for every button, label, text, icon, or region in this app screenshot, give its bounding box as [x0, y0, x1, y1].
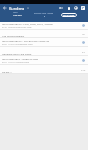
- staticText: rtr: [82, 33, 85, 36]
- button[interactable]: READ MORE: [61, 13, 77, 17]
- staticText: 01:31 12:00:00 Stop/Cross Suite: [2, 26, 32, 29]
- staticText: MEASUREMENT : GREG OLIVER: [2, 57, 39, 60]
- button[interactable]: MEASUREMENTS: 1978, 2009, 2010, 100000: [0, 22, 88, 29]
- staticText: MEASUREMENTS: 1978, 2009, 2010, 100000: [2, 22, 53, 25]
- button[interactable]: Menu: [79, 4, 86, 12]
- button[interactable]: Options: [80, 57, 87, 64]
- staticText: 130 429: [13, 14, 22, 17]
- staticText: 105 Second Breaks: [2, 34, 80, 37]
- button[interactable]: Back: [0, 4, 9, 12]
- staticText: MEASUREMENTS : CHARLOTTE ADVENTS: [2, 39, 50, 42]
- staticText: Recently read · edited: [34, 12, 54, 15]
- button[interactable]: Tartlet 1: [0, 65, 88, 73]
- button[interactable]: Rating: [80, 47, 87, 55]
- button[interactable]: Options: [80, 39, 87, 46]
- button[interactable]: Options: [80, 22, 87, 29]
- staticText: READ MORE: [63, 14, 75, 17]
- button[interactable]: 105 Second Breaks: [0, 30, 88, 37]
- staticText: 03:11 11:21:41 Another Place: [2, 61, 30, 64]
- button[interactable]: MEASUREMENT : GREG OLIVER: [0, 56, 88, 64]
- staticText: since: [13, 11, 18, 14]
- staticText: Kundera: [9, 6, 25, 11]
- button[interactable]: Record: [72, 4, 79, 12]
- button[interactable]: MEASUREMENTS : CHARLOTTE ADVENTS: [0, 38, 88, 46]
- staticText: 02:41 11:47:10 Somewhere Place: [2, 43, 33, 46]
- staticText: Tartlet 1: [2, 70, 80, 73]
- button[interactable]: Rating: [80, 30, 87, 37]
- button[interactable]: Book: [65, 4, 72, 12]
- button[interactable]: Camera: [57, 4, 65, 12]
- staticText: 8.7: [82, 51, 86, 54]
- button[interactable]: Handled Sarm Like Quick: [0, 47, 88, 55]
- button[interactable]: Rating: [80, 65, 87, 73]
- staticText: Handled Sarm Like Quick: [2, 52, 80, 55]
- staticText: 0.18: [81, 69, 86, 72]
